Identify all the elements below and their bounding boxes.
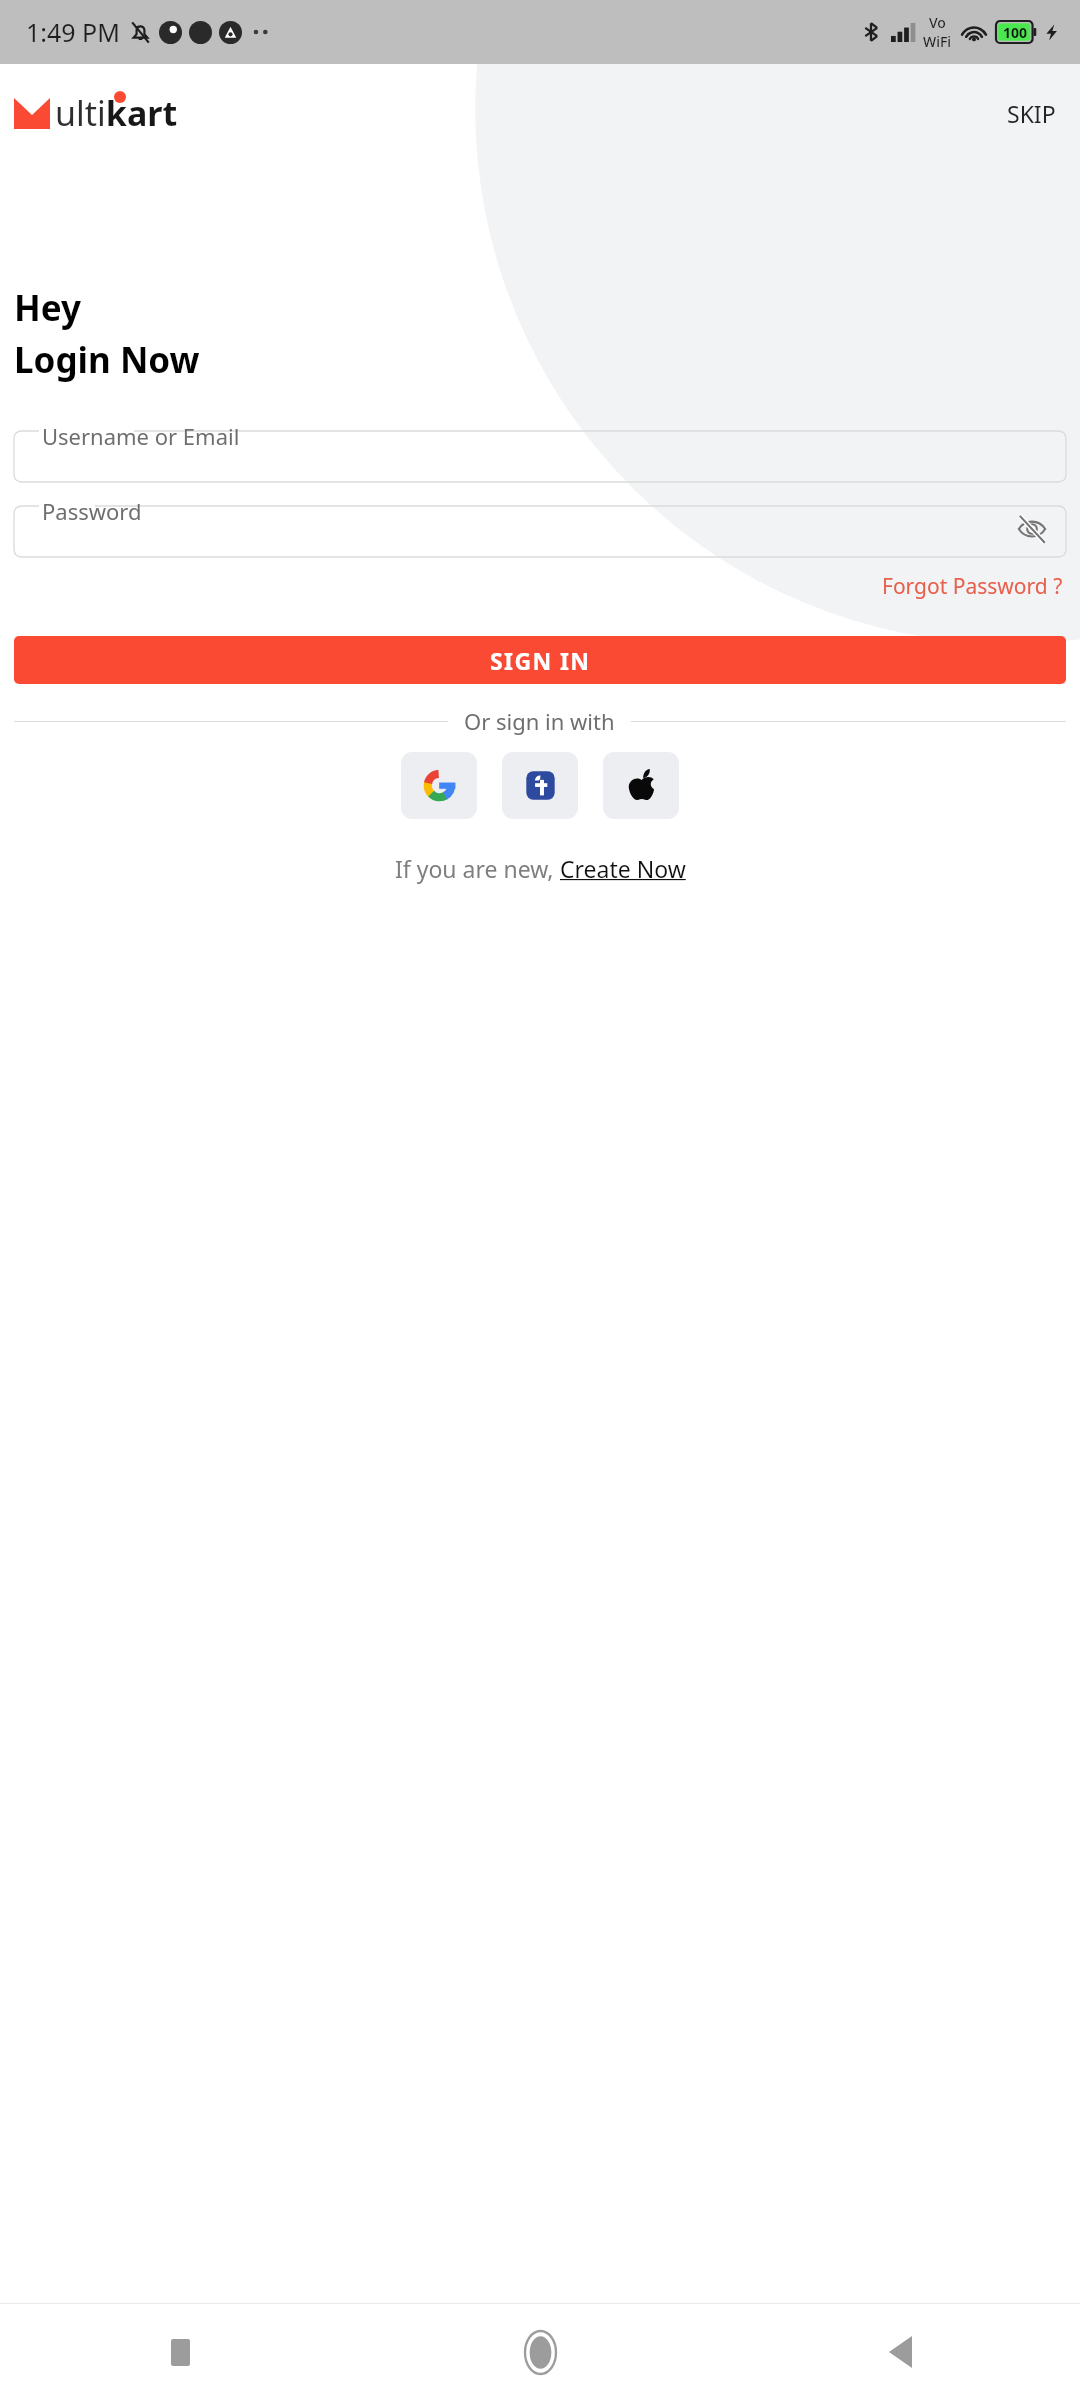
button[interactable]: Home [360,2304,720,2400]
button[interactable]: Sign in with Facebook [502,752,578,819]
staticText: Forgot Password ? [882,572,1063,601]
staticText: SIGN IN [490,645,591,676]
staticText: Hey [14,284,81,332]
button[interactable]: SIGN IN [14,636,1066,684]
staticText: Vo [929,13,946,32]
button[interactable]: Sign in with Apple [603,752,679,819]
button[interactable]: SKIP [997,90,1066,137]
staticText: 1:49 PM [26,15,120,49]
staticText: 100 [1003,23,1028,42]
button[interactable]: Create Now [560,853,686,884]
button[interactable]: Show password [1010,507,1054,551]
staticText: Username or Email [42,421,240,451]
staticText: Password [42,496,142,526]
staticText: Create Now [560,853,686,884]
staticText: If you are new, [395,853,560,884]
button[interactable]: Recents [0,2304,360,2400]
staticText: WiFi [923,32,952,51]
button[interactable]: Sign in with Google [401,752,477,819]
button[interactable]: Back [720,2304,1080,2400]
staticText: ultikart [55,90,178,136]
button[interactable]: Forgot Password ? [879,567,1066,606]
staticText: SKIP [1007,98,1056,129]
staticText: Login Now [14,336,200,384]
staticText: Or sign in with [464,706,615,736]
